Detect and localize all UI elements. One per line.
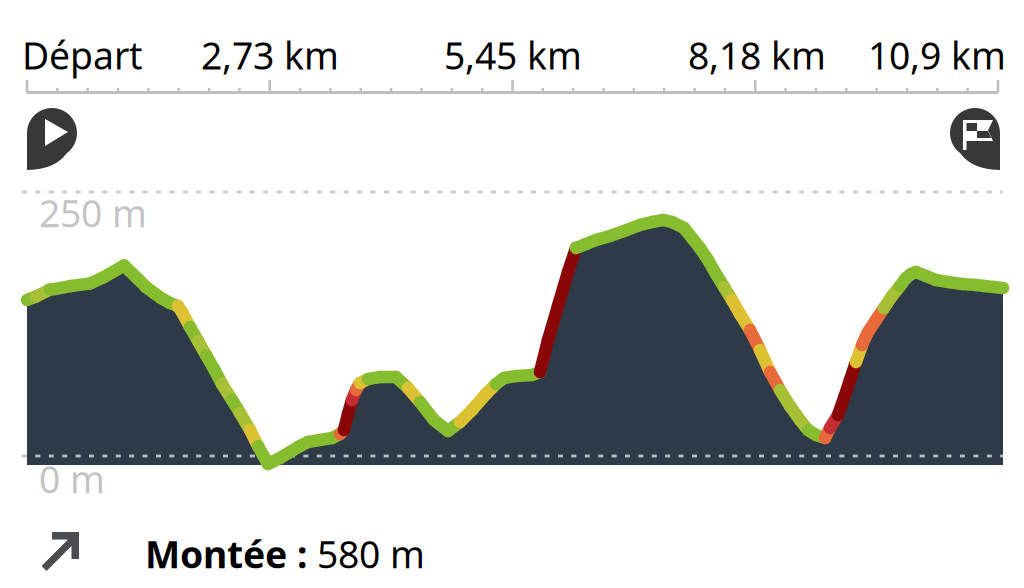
staticText: Départ — [22, 30, 142, 80]
button[interactable]: Arrivée — [0, 0, 1024, 588]
staticText: 8,18 km — [688, 30, 826, 80]
staticText: Montée : — [145, 529, 307, 579]
staticText: 580 m — [307, 529, 425, 579]
staticText: 250 m — [39, 188, 147, 238]
staticText: 2,73 km — [201, 30, 339, 80]
staticText: 10,9 km — [868, 30, 1006, 80]
button[interactable]: Départ — [0, 0, 1024, 588]
staticText: 0 m — [39, 454, 105, 504]
staticText: 5,45 km — [444, 30, 582, 80]
